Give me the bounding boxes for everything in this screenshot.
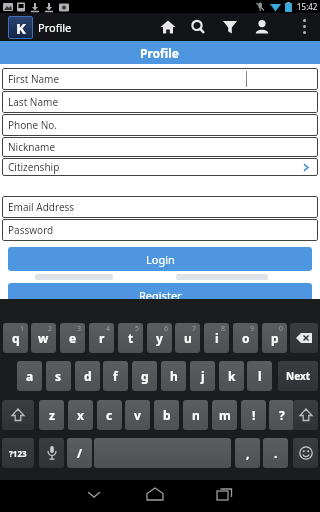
button[interactable]: w (31, 323, 56, 353)
button[interactable]: g (132, 361, 157, 391)
staticText: r (99, 330, 105, 346)
button[interactable]: K (8, 16, 33, 39)
staticText: w (38, 330, 49, 346)
staticText: m (219, 407, 231, 423)
button[interactable]: Password (2, 219, 318, 241)
button[interactable]: u (175, 323, 200, 353)
staticText: p (271, 330, 279, 346)
button[interactable]: Next (278, 361, 318, 391)
button[interactable]: b (154, 400, 179, 430)
staticText: f (113, 368, 118, 384)
button[interactable]: q (3, 323, 28, 353)
staticText: 6 (164, 324, 169, 334)
button[interactable]: p (262, 323, 287, 353)
staticText: l (258, 368, 262, 384)
staticText: a (26, 368, 34, 384)
staticText: Login (146, 252, 175, 267)
staticText: y (156, 330, 163, 346)
staticText: b (163, 407, 171, 423)
staticText: 8 (221, 324, 226, 334)
staticText: Profile (38, 20, 72, 35)
button[interactable]: ? (269, 400, 294, 430)
button[interactable] (254, 19, 270, 35)
button[interactable]: Citizenship (2, 158, 318, 176)
button[interactable]: Register (8, 283, 312, 307)
staticText: q (12, 330, 20, 346)
staticText: o (242, 330, 250, 346)
button[interactable]: s (46, 361, 71, 391)
button[interactable]: Phone No. (2, 114, 318, 136)
button[interactable] (190, 19, 206, 35)
staticText: h (170, 368, 178, 384)
button[interactable]: y (147, 323, 172, 353)
staticText: Last Name (8, 95, 59, 109)
staticText: ?123 (9, 448, 27, 459)
staticText: . (274, 445, 278, 461)
staticText: i (215, 330, 219, 346)
button[interactable]: ?123 (2, 438, 34, 468)
button[interactable]: h (161, 361, 186, 391)
staticText: 4 (106, 324, 111, 334)
button[interactable] (94, 438, 231, 468)
staticText: 9 (250, 324, 255, 334)
staticText: 1 (20, 324, 25, 334)
staticText: , (246, 445, 250, 461)
button[interactable]: Email Address (2, 196, 318, 218)
button[interactable]: d (75, 361, 100, 391)
button[interactable] (160, 19, 176, 35)
button[interactable]: . (263, 438, 288, 468)
button[interactable] (39, 438, 64, 468)
button[interactable]: t (118, 323, 143, 353)
staticText: 15:42 (297, 1, 318, 12)
button[interactable]: Last Name (2, 91, 318, 113)
staticText: 5 (135, 324, 140, 334)
button[interactable] (301, 18, 308, 36)
button[interactable]: k (219, 361, 244, 391)
staticText: Citizenship (8, 160, 60, 174)
button[interactable] (2, 400, 34, 430)
button[interactable]: e (60, 323, 85, 353)
staticText: Password (8, 223, 54, 237)
button[interactable] (87, 490, 101, 500)
button[interactable] (290, 323, 318, 353)
button[interactable]: ! (241, 400, 266, 430)
button[interactable] (216, 487, 233, 501)
staticText: Email Address (8, 200, 75, 214)
button[interactable]: j (190, 361, 215, 391)
button[interactable]: , (235, 438, 260, 468)
staticText: n (192, 407, 200, 423)
staticText: j (201, 368, 205, 384)
button[interactable]: i (204, 323, 229, 353)
button[interactable]: First Name (2, 68, 318, 90)
button[interactable]: Nickname (2, 137, 318, 157)
button[interactable]: n (183, 400, 208, 430)
button[interactable]: z (39, 400, 64, 430)
button[interactable]: Login (8, 247, 312, 271)
button[interactable]: f (103, 361, 128, 391)
button[interactable]: l (247, 361, 272, 391)
staticText: ! (252, 407, 256, 423)
button[interactable]: c (97, 400, 122, 430)
staticText: 7 (192, 324, 197, 334)
staticText: d (84, 368, 92, 384)
staticText: z (49, 407, 55, 423)
button[interactable]: m (212, 400, 237, 430)
button[interactable] (293, 400, 318, 430)
button[interactable]: o (233, 323, 258, 353)
staticText: Phone No. (8, 118, 58, 132)
button[interactable] (293, 438, 318, 468)
staticText: c (106, 407, 113, 423)
button[interactable]: x (68, 400, 93, 430)
staticText: x (77, 407, 84, 423)
staticText: t (128, 330, 134, 346)
staticText: 0 (279, 324, 284, 334)
button[interactable]: a (17, 361, 42, 391)
button[interactable]: v (125, 400, 150, 430)
button[interactable]: r (89, 323, 114, 353)
staticText: v (134, 407, 141, 423)
staticText: u (184, 330, 192, 346)
staticText: First Name (8, 72, 60, 86)
button[interactable] (222, 19, 238, 35)
button[interactable] (146, 487, 164, 501)
button[interactable]: / (67, 438, 92, 468)
